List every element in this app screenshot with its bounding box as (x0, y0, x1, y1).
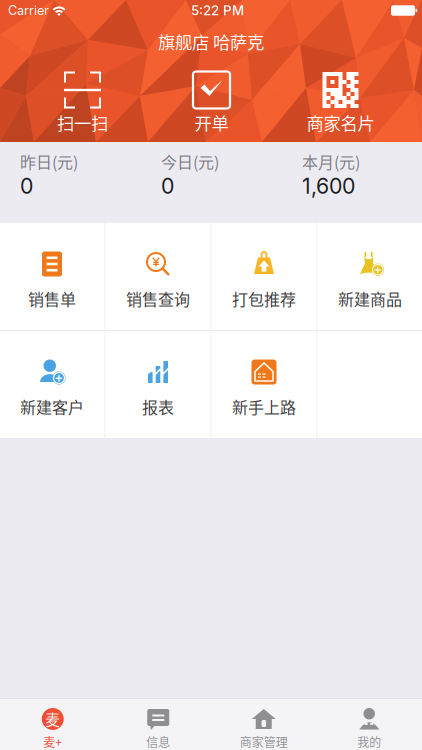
staticText: 信息 (146, 733, 170, 750)
button[interactable]: 新建商品 (317, 223, 422, 330)
staticText: 打包推荐 (232, 287, 296, 310)
staticText: 报表 (142, 395, 174, 418)
button[interactable]: 信息 (105, 699, 211, 750)
button[interactable]: 新建客户 (0, 331, 104, 438)
button[interactable]: 开单 (147, 72, 276, 134)
button[interactable]: 扫一扫 (18, 72, 147, 134)
button[interactable]: 商家管理 (211, 699, 316, 750)
staticText: 我的 (357, 733, 381, 750)
button[interactable]: 销售单 (0, 223, 104, 330)
staticText: 昨日(元) (20, 150, 78, 173)
staticText: 新建客户 (20, 395, 84, 418)
staticText: 旗舰店 哈萨克 (158, 29, 264, 54)
staticText: 麦 (45, 708, 60, 730)
button[interactable]: 打包推荐 (211, 223, 316, 330)
staticText: 销售单 (28, 287, 76, 310)
staticText: 扫一扫 (57, 110, 108, 135)
button[interactable]: 报表 (105, 331, 210, 438)
staticText: 商家名片 (306, 110, 374, 135)
button[interactable]: 销售查询 (105, 223, 210, 330)
staticText: 新手上路 (232, 395, 296, 418)
staticText: 新建商品 (338, 287, 402, 310)
staticText: 0 (20, 173, 33, 199)
staticText: 今日(元) (161, 150, 219, 173)
button[interactable]: 麦 (0, 699, 105, 750)
button[interactable]: 我的 (316, 699, 422, 750)
staticText: 麦+ (43, 733, 62, 750)
staticText: 5:22 PM (191, 2, 244, 18)
staticText: 商家管理 (240, 733, 288, 750)
button[interactable]: 商家名片 (276, 72, 405, 134)
button[interactable]: 新手上路 (211, 331, 316, 438)
staticText: Carrier (8, 3, 49, 18)
staticText: 本月(元) (302, 150, 360, 173)
staticText: 销售查询 (126, 287, 190, 310)
staticText: 开单 (194, 110, 228, 135)
staticText: 1,600 (302, 173, 355, 199)
staticText: 0 (161, 173, 174, 199)
